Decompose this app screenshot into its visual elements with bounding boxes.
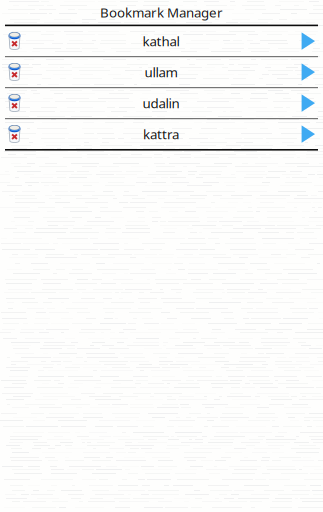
button[interactable]: kattra xyxy=(143,119,179,149)
staticText: kathal xyxy=(142,32,179,50)
button[interactable]: Open kathal xyxy=(296,26,320,56)
button[interactable]: Delete kattra xyxy=(3,119,26,149)
button[interactable]: Open ullam xyxy=(296,57,320,87)
button[interactable]: Open kattra xyxy=(296,119,320,149)
button[interactable]: Delete ullam xyxy=(3,57,26,87)
staticText: ullam xyxy=(144,63,177,81)
button[interactable]: Delete kathal xyxy=(3,26,26,56)
button[interactable]: Delete udalin xyxy=(3,88,26,118)
staticText: udalin xyxy=(142,94,179,112)
staticText: kattra xyxy=(143,125,179,143)
button[interactable]: ullam xyxy=(144,57,177,87)
staticText: Bookmark Manager xyxy=(100,3,223,21)
button[interactable]: Open udalin xyxy=(296,88,320,118)
button[interactable]: kathal xyxy=(142,26,179,56)
button[interactable]: udalin xyxy=(142,88,179,118)
